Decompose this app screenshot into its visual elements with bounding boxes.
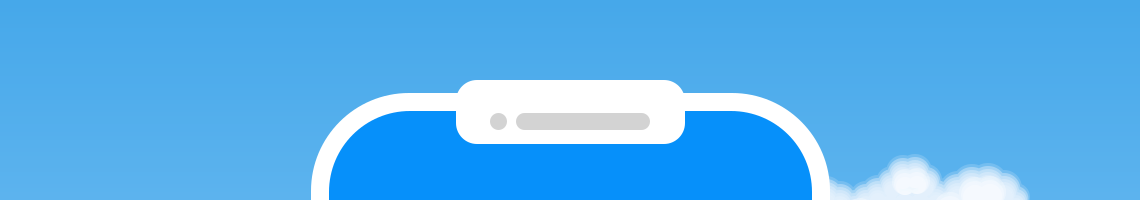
button[interactable]: iPhone <box>311 93 830 200</box>
